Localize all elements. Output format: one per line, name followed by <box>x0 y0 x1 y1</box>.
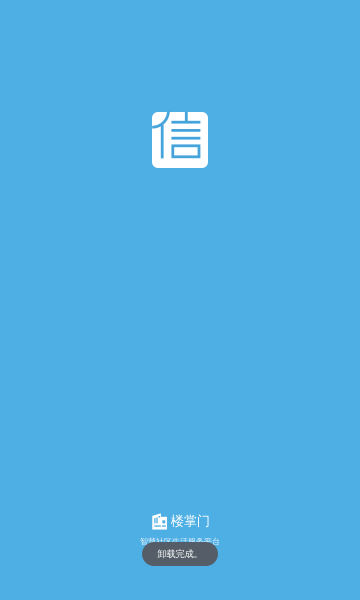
staticText: 楼掌门 <box>171 513 210 529</box>
staticText: 卸载完成。 <box>157 548 202 560</box>
staticText: 智慧社区生活服务平台 <box>140 537 220 546</box>
